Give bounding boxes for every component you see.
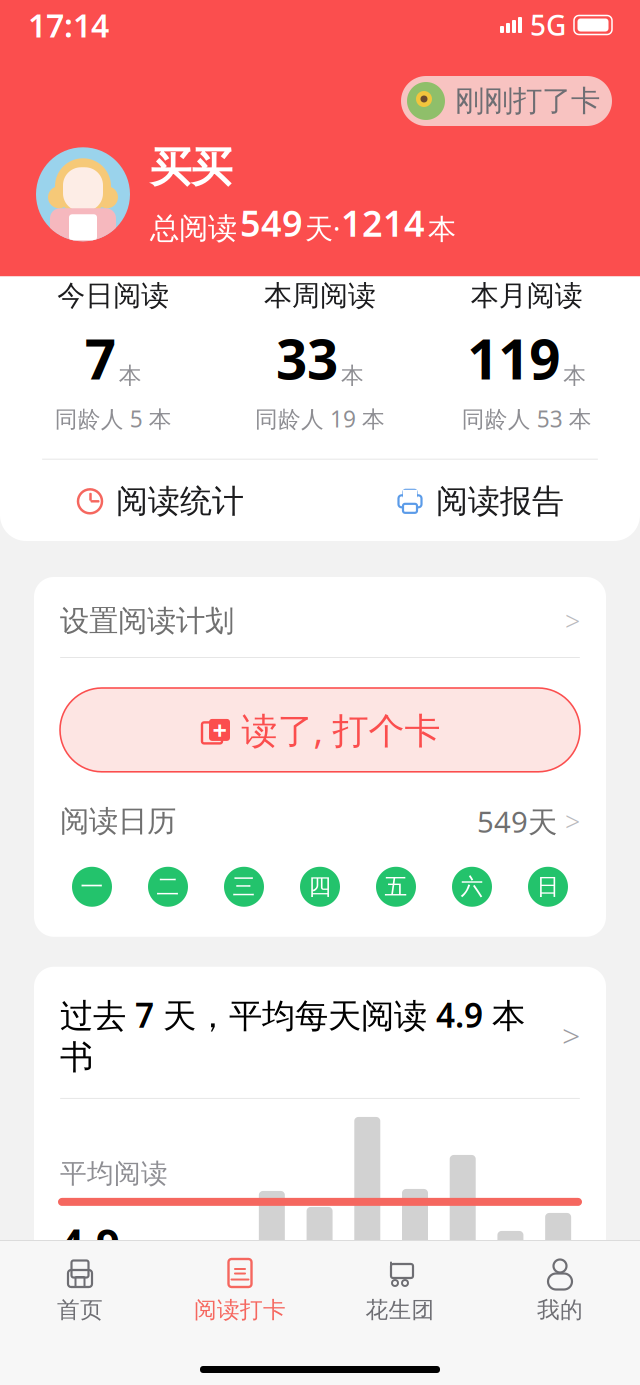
- staticText: 17:14: [28, 4, 109, 46]
- staticText: 五: [384, 873, 407, 901]
- staticText: 本周阅读: [264, 279, 376, 313]
- staticText: +: [212, 713, 226, 747]
- button[interactable]: 过去 7 天，平均每天阅读 4.9 本书: [34, 967, 606, 1098]
- staticText: 首页: [57, 1296, 103, 1324]
- staticText: 同龄人 53 本: [462, 404, 592, 434]
- staticText: 本月阅读: [471, 279, 583, 313]
- staticText: 二: [156, 873, 179, 901]
- button[interactable]: 刚刚打了卡: [401, 76, 612, 126]
- button[interactable]: 阅读打卡: [160, 1251, 320, 1330]
- staticText: 四: [308, 873, 331, 901]
- staticText: 买买: [150, 142, 232, 193]
- staticText: 同龄人 19 本: [255, 404, 385, 434]
- staticText: 今日阅读: [57, 279, 169, 313]
- staticText: 日: [536, 873, 559, 901]
- staticText: 7: [85, 322, 116, 395]
- button[interactable]: +: [34, 658, 606, 772]
- staticText: 阅读日历: [60, 803, 176, 839]
- staticText: 花生团: [365, 1296, 434, 1324]
- staticText: 平均阅读: [60, 1157, 168, 1190]
- staticText: 本: [341, 362, 364, 389]
- staticText: 我的: [537, 1296, 583, 1324]
- staticText: 一: [80, 873, 103, 901]
- staticText: 33: [276, 322, 338, 395]
- staticText: 4.9: [60, 1216, 120, 1271]
- staticText: 阅读打卡: [194, 1296, 286, 1324]
- staticText: 549天: [477, 802, 557, 841]
- button[interactable]: 我的: [480, 1251, 640, 1330]
- button[interactable]: 设置阅读计划: [34, 577, 606, 657]
- staticText: 同龄人 5 本: [55, 404, 172, 434]
- button[interactable]: 首页: [0, 1251, 160, 1330]
- staticText: >: [562, 1014, 580, 1057]
- button[interactable]: 阅读统计: [0, 468, 320, 535]
- staticText: 119: [467, 322, 560, 395]
- button[interactable]: 花生团: [320, 1251, 480, 1330]
- staticText: >: [565, 804, 580, 839]
- staticText: 5G: [530, 6, 566, 44]
- staticText: 设置阅读计划: [60, 603, 234, 639]
- staticText: 总阅读: [150, 210, 237, 246]
- staticText: 刚刚打了卡: [455, 83, 600, 119]
- staticText: 天·: [305, 209, 341, 247]
- staticText: 本: [122, 1239, 145, 1267]
- staticText: 读了, 打个卡: [241, 706, 440, 754]
- staticText: 过去 7 天，平均每天阅读 4.9 本书: [60, 993, 525, 1078]
- button[interactable]: 阅读日历: [34, 772, 606, 841]
- staticText: 本: [563, 362, 586, 389]
- staticText: 三: [232, 873, 255, 901]
- button[interactable]: 阅读报告: [320, 468, 640, 535]
- staticText: 1214: [341, 199, 425, 247]
- staticText: 阅读统计: [116, 482, 244, 521]
- staticText: 本: [428, 212, 456, 247]
- staticText: 549: [240, 199, 303, 247]
- staticText: >: [565, 603, 580, 639]
- staticText: 六: [460, 873, 483, 901]
- staticText: 阅读报告: [436, 482, 564, 521]
- staticText: 本: [119, 362, 142, 389]
